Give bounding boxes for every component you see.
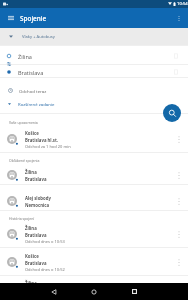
staticText: História spojení (9, 216, 35, 221)
staticText: Odchod za 1 hod 20 min (25, 144, 71, 149)
button[interactable]: Swap stations (6, 61, 12, 67)
staticText: Odchod dnes o 10:50 (25, 294, 65, 299)
staticText: Bratislava (25, 232, 47, 238)
button[interactable]: Žilina (0, 223, 188, 246)
staticText: Bratislava (25, 260, 47, 266)
button[interactable]: Item options (173, 134, 184, 145)
button[interactable]: Item options (173, 257, 184, 268)
button[interactable]: Navigation menu (4, 8, 17, 28)
button[interactable]: Bratislava (0, 66, 188, 78)
button[interactable]: Item options (173, 196, 184, 207)
staticText: Košice (25, 253, 39, 259)
button[interactable]: Žilina (0, 278, 188, 300)
button[interactable]: Home (84, 283, 104, 300)
staticText: Vlaky + Autobusy (22, 34, 55, 40)
staticText: Odchod dnes o 10:52 (25, 267, 65, 272)
staticText: Nemocnica (25, 202, 50, 208)
button[interactable]: Item options (173, 229, 184, 240)
staticText: Košice (25, 130, 39, 136)
staticText: Bratislava hl.st. (25, 137, 59, 143)
staticText: 10:54 (177, 1, 188, 7)
staticText: Žilina (25, 225, 37, 231)
staticText: Bratislava (25, 176, 47, 182)
staticText: Vaše upozornenia (9, 120, 38, 125)
staticText: Žilina (25, 280, 37, 286)
button[interactable]: Alej slobody (0, 193, 188, 210)
button[interactable]: Žilina (0, 47, 188, 65)
button[interactable]: Vlaky + Autobusy (0, 28, 188, 45)
button[interactable]: Košice (0, 128, 188, 151)
staticText: Rozšírené zadanie (18, 101, 55, 107)
staticText: Obľúbené spojenia (9, 158, 40, 163)
button[interactable]: Back (44, 283, 64, 300)
button[interactable]: Search (163, 104, 181, 122)
staticText: Žilina (25, 169, 37, 175)
button[interactable]: Recents (124, 283, 144, 300)
staticText: Žilina (18, 53, 32, 60)
button[interactable]: Odchod teraz (0, 84, 188, 97)
staticText: Odchod dnes o 10:53 (25, 239, 65, 244)
button[interactable]: Item options (173, 170, 184, 181)
staticText: Alej slobody (25, 195, 51, 201)
button[interactable]: Žilina (0, 167, 188, 184)
staticText: Bratislava (18, 69, 44, 76)
button[interactable]: Rozšírené zadanie (0, 97, 188, 110)
staticText: Spojenie (20, 14, 47, 23)
staticText: Odchod teraz (19, 88, 47, 94)
button[interactable]: More options (172, 8, 185, 28)
button[interactable]: Košice (0, 251, 188, 274)
